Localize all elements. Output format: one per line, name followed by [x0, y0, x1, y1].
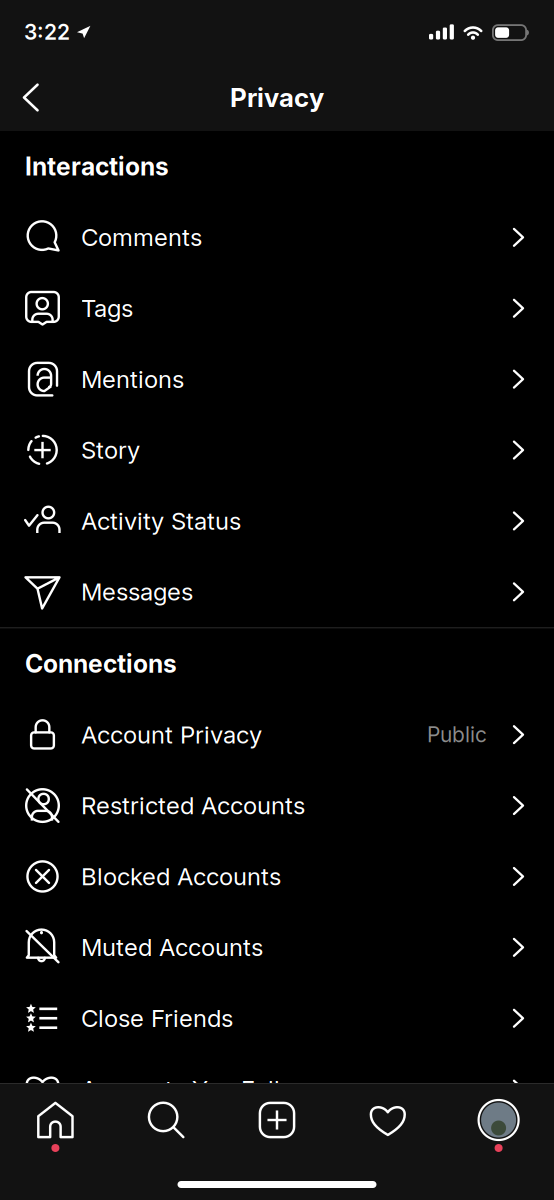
staticText: Accounts You Follow: [81, 1075, 313, 1104]
button[interactable]: Accounts You Follow: [0, 1054, 554, 1125]
staticText: Blocked Accounts: [81, 862, 281, 891]
staticText: Comments: [81, 223, 202, 252]
button[interactable]: Blocked Accounts: [0, 841, 554, 912]
staticText: Tags: [81, 294, 133, 323]
button[interactable]: Story: [0, 415, 554, 485]
staticText: Story: [81, 435, 140, 464]
button[interactable]: Muted Accounts: [0, 912, 554, 983]
staticText: Activity Status: [81, 506, 241, 535]
button[interactable]: Account Privacy: [0, 699, 554, 770]
button[interactable]: Mentions: [0, 344, 554, 415]
staticText: Account Privacy: [81, 720, 262, 749]
button[interactable]: Restricted Accounts: [0, 770, 554, 841]
staticText: Muted Accounts: [81, 933, 263, 962]
button[interactable]: Messages: [0, 556, 554, 627]
button[interactable]: Search: [111, 1084, 222, 1156]
staticText: Messages: [81, 577, 193, 606]
staticText: Public: [427, 722, 487, 747]
staticText: Connections: [25, 649, 177, 679]
button[interactable]: Back: [8, 69, 54, 125]
button[interactable]: Profile: [443, 1084, 554, 1156]
staticText: Close Friends: [81, 1004, 233, 1033]
staticText: Restricted Accounts: [81, 791, 305, 820]
button[interactable]: New post: [222, 1084, 332, 1156]
staticText: Privacy: [230, 82, 324, 113]
staticText: Mentions: [81, 365, 184, 394]
button[interactable]: Activity Status: [0, 485, 554, 556]
staticText: Interactions: [25, 151, 169, 181]
button[interactable]: Close Friends: [0, 983, 554, 1054]
button[interactable]: Home: [0, 1084, 111, 1156]
button[interactable]: Tags: [0, 273, 554, 344]
button[interactable]: Activity: [332, 1084, 443, 1156]
staticText: 3:22: [24, 19, 70, 45]
button[interactable]: Comments: [0, 202, 554, 273]
